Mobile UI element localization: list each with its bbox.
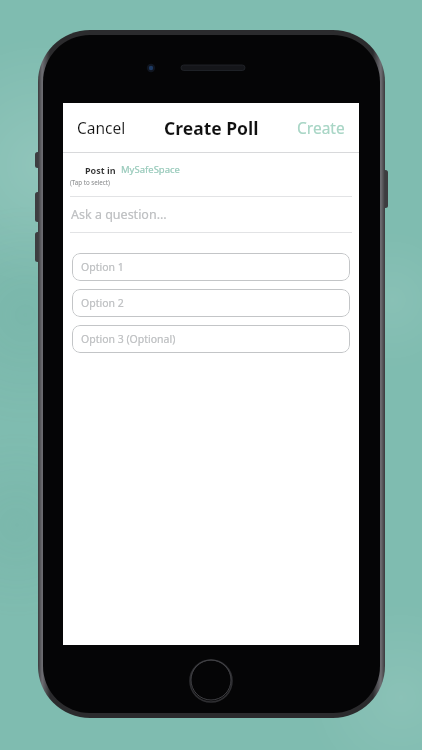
button[interactable]: Cancel (63, 107, 140, 148)
staticText: Option 2 (81, 296, 124, 310)
button[interactable]: Option 2 (72, 289, 350, 317)
button[interactable]: Post in (63, 153, 359, 196)
button[interactable]: Option 1 (72, 253, 350, 281)
staticText: Option 3 (Optional) (81, 332, 176, 346)
staticText: MySafeSpace (121, 163, 180, 176)
staticText: Option 1 (81, 260, 124, 274)
staticText: Create (297, 117, 345, 138)
staticText: (Tap to select) (70, 178, 110, 186)
staticText: Create Poll (164, 116, 259, 140)
button[interactable]: Ask a question... (63, 197, 359, 232)
staticText: Cancel (77, 117, 126, 138)
staticText: Ask a question... (71, 206, 167, 223)
staticText: Post in (85, 164, 116, 176)
button[interactable]: Option 3 (Optional) (72, 325, 350, 353)
button[interactable]: Create (283, 107, 359, 148)
